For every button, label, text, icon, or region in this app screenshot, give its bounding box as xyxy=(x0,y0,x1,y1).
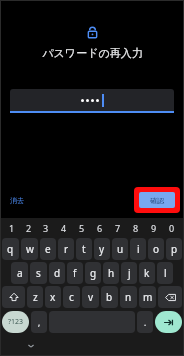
button[interactable]: 2 xyxy=(20,220,37,236)
button[interactable]: Next xyxy=(155,311,182,333)
button[interactable]: h xyxy=(103,262,119,284)
button[interactable]: 8 xyxy=(127,220,145,236)
staticText: y xyxy=(99,242,105,256)
button[interactable]: k xyxy=(139,262,155,284)
button[interactable]: 7 xyxy=(109,220,127,236)
staticText: 確認 xyxy=(150,196,164,205)
button[interactable]: 消去 xyxy=(7,193,27,208)
button[interactable]: 9 xyxy=(145,220,163,236)
button[interactable]: 4 xyxy=(55,220,73,236)
button[interactable]: j xyxy=(121,262,137,284)
staticText: h xyxy=(108,266,115,280)
button[interactable]: t xyxy=(76,238,92,260)
staticText: u xyxy=(117,242,124,256)
staticText: 2 xyxy=(26,222,32,234)
staticText: 1 xyxy=(9,222,15,234)
staticText: s xyxy=(36,266,41,280)
staticText: j xyxy=(128,266,131,280)
button[interactable]: v xyxy=(82,286,99,308)
staticText: w xyxy=(26,242,34,256)
staticText: q xyxy=(7,242,14,256)
staticText: n xyxy=(125,290,132,304)
button[interactable]: , xyxy=(31,311,47,333)
staticText: 9 xyxy=(151,222,157,234)
button[interactable]: 0 xyxy=(163,220,181,236)
button[interactable]: e xyxy=(40,238,56,260)
button[interactable]: a xyxy=(11,262,28,284)
button[interactable]: q xyxy=(2,238,19,260)
staticText: 3 xyxy=(43,222,49,234)
staticText: . xyxy=(144,317,147,328)
staticText: f xyxy=(73,266,77,280)
staticText: o xyxy=(153,242,160,256)
staticText: c xyxy=(69,290,74,304)
button[interactable]: g xyxy=(85,262,101,284)
button[interactable]: 5 xyxy=(73,220,91,236)
staticText: , xyxy=(38,317,41,328)
staticText: a xyxy=(17,266,23,280)
staticText: z xyxy=(33,290,38,304)
button[interactable]: w xyxy=(21,238,38,260)
staticText: k xyxy=(144,266,150,280)
staticText: m xyxy=(143,290,153,304)
button[interactable]: r xyxy=(58,238,74,260)
button[interactable]: 3 xyxy=(37,220,55,236)
staticText: v xyxy=(88,290,94,304)
button[interactable]: c xyxy=(63,286,80,308)
button[interactable]: m xyxy=(139,286,156,308)
staticText: g xyxy=(90,266,97,280)
staticText: b xyxy=(106,290,113,304)
staticText: x xyxy=(50,290,56,304)
button[interactable] xyxy=(10,89,174,111)
button[interactable]: p xyxy=(166,238,182,260)
button[interactable]: 1 xyxy=(3,220,20,236)
button[interactable]: y xyxy=(94,238,110,260)
button[interactable]: l xyxy=(157,262,173,284)
staticText: ?123 xyxy=(8,317,24,327)
staticText: d xyxy=(54,266,61,280)
button[interactable]: d xyxy=(49,262,65,284)
button[interactable]: Shift xyxy=(2,286,25,308)
staticText: l xyxy=(164,266,167,280)
button[interactable]: z xyxy=(27,286,43,308)
staticText: t xyxy=(82,242,86,256)
staticText: パスワードの再入力 xyxy=(42,46,143,60)
staticText: 7 xyxy=(115,222,121,234)
button[interactable]: b xyxy=(101,286,118,308)
button[interactable]: Backspace xyxy=(158,286,182,308)
button[interactable]: Hide keyboard xyxy=(24,339,38,353)
button[interactable]: 6 xyxy=(91,220,109,236)
staticText: i xyxy=(137,242,140,256)
staticText: 4 xyxy=(61,222,67,234)
button[interactable]: i xyxy=(130,238,146,260)
button[interactable]: . xyxy=(137,311,153,333)
staticText: r xyxy=(64,242,69,256)
staticText: 6 xyxy=(97,222,103,234)
staticText: p xyxy=(171,242,178,256)
staticText: 0 xyxy=(169,222,175,234)
button[interactable]: o xyxy=(148,238,164,260)
button[interactable]: s xyxy=(30,262,47,284)
button[interactable]: 確認 xyxy=(134,187,180,213)
staticText: 消去 xyxy=(10,196,24,205)
button[interactable]: n xyxy=(120,286,137,308)
staticText: e xyxy=(45,242,51,256)
button[interactable]: u xyxy=(112,238,128,260)
staticText: 5 xyxy=(79,222,85,234)
button[interactable]: x xyxy=(45,286,61,308)
button[interactable]: ?123 xyxy=(2,311,29,333)
staticText: 8 xyxy=(133,222,139,234)
button[interactable]: f xyxy=(67,262,83,284)
